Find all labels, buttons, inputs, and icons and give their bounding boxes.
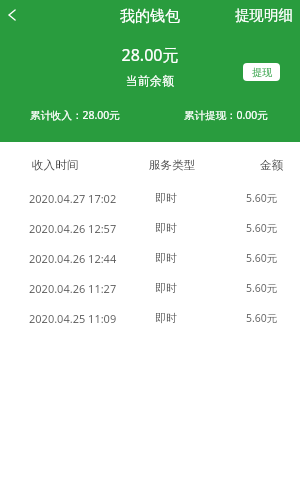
staticText: 2020.04.26 11:27 bbox=[29, 281, 117, 296]
staticText: 5.60元 bbox=[246, 191, 278, 205]
button[interactable]: 提现明细 bbox=[229, 0, 300, 30]
staticText: 收入时间 bbox=[32, 158, 79, 173]
button[interactable]: Back bbox=[0, 0, 23, 30]
button[interactable]: 2020.04.26 12:57 bbox=[0, 220, 300, 236]
staticText: 即时 bbox=[155, 311, 177, 325]
staticText: 即时 bbox=[155, 221, 177, 235]
staticText: 5.60元 bbox=[246, 221, 278, 235]
staticText: 5.60元 bbox=[246, 311, 278, 325]
staticText: 我的钱包 bbox=[0, 7, 300, 26]
staticText: 累计收入：28.00元 bbox=[30, 108, 120, 122]
staticText: 即时 bbox=[155, 251, 177, 265]
staticText: 2020.04.25 11:09 bbox=[29, 311, 117, 326]
staticText: 28.00元 bbox=[0, 44, 300, 66]
staticText: 即时 bbox=[155, 191, 177, 205]
staticText: 当前余额 bbox=[0, 73, 300, 88]
staticText: 提现明细 bbox=[235, 6, 293, 24]
button[interactable]: 收入时间 bbox=[0, 157, 300, 173]
staticText: 5.60元 bbox=[246, 281, 278, 295]
staticText: 即时 bbox=[155, 281, 177, 295]
button[interactable]: 2020.04.26 12:44 bbox=[0, 250, 300, 266]
staticText: 2020.04.26 12:57 bbox=[29, 221, 117, 236]
button[interactable]: 2020.04.25 11:09 bbox=[0, 310, 300, 326]
staticText: 2020.04.26 12:44 bbox=[29, 251, 117, 266]
staticText: 累计提现：0.00元 bbox=[184, 108, 268, 122]
staticText: 服务类型 bbox=[149, 158, 196, 173]
staticText: 提现 bbox=[252, 66, 272, 79]
button[interactable]: 2020.04.27 17:02 bbox=[0, 190, 300, 206]
button[interactable]: 2020.04.26 11:27 bbox=[0, 280, 300, 296]
button[interactable]: 提现 bbox=[243, 63, 280, 81]
staticText: 5.60元 bbox=[246, 251, 278, 265]
staticText: 金额 bbox=[260, 158, 284, 173]
staticText: 2020.04.27 17:02 bbox=[29, 191, 117, 206]
